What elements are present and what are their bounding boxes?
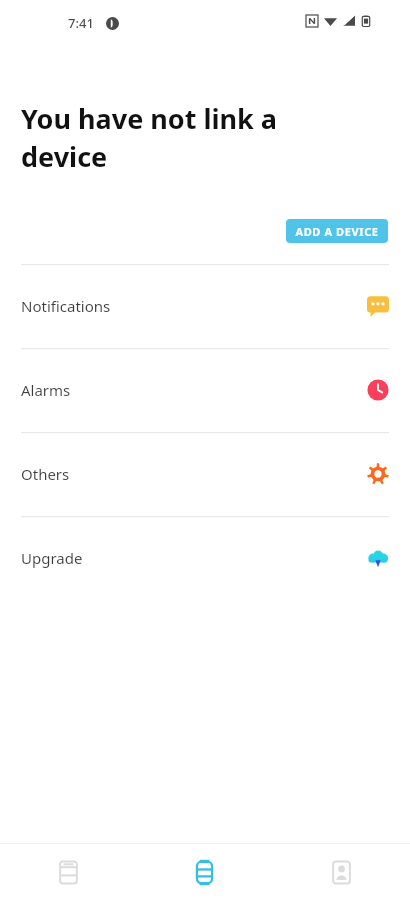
button[interactable]: Upgrade: [0, 516, 410, 600]
button[interactable]: Profile: [273, 844, 410, 900]
button[interactable]: Alarms: [0, 348, 410, 432]
staticText: 7:41: [68, 14, 94, 32]
button[interactable]: ADD A DEVICE: [286, 219, 388, 243]
button[interactable]: Watch: [136, 844, 273, 900]
staticText: Upgrade: [21, 548, 83, 568]
staticText: ADD A DEVICE: [295, 224, 379, 239]
staticText: Alarms: [21, 380, 71, 400]
button[interactable]: Notifications: [0, 264, 410, 348]
staticText: Others: [21, 464, 70, 484]
button[interactable]: Cards: [0, 844, 136, 900]
staticText: You have not link a device: [21, 100, 278, 175]
staticText: Notifications: [21, 296, 111, 316]
button[interactable]: Others: [0, 432, 410, 516]
